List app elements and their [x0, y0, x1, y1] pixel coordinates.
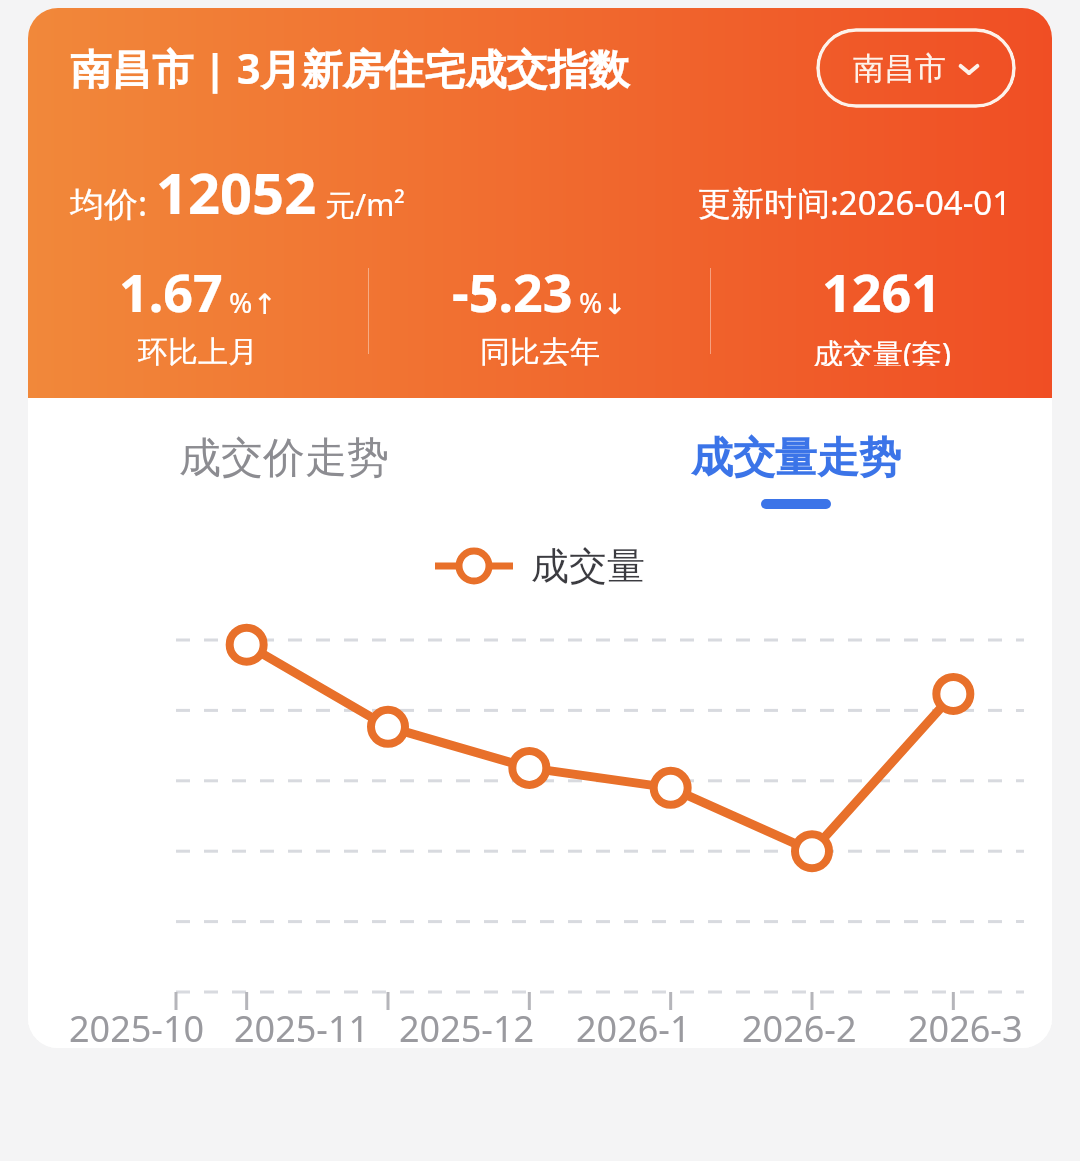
staticText: 2026-3 — [908, 1004, 1023, 1048]
staticText: 2025-12 — [399, 1004, 535, 1048]
button[interactable]: 1.67 — [28, 256, 368, 366]
staticText: 2026-2 — [742, 1004, 857, 1048]
staticText: -5.23 — [452, 256, 573, 327]
staticText: 1261 — [822, 256, 941, 327]
button[interactable]: 成交价走势 — [28, 432, 540, 532]
staticText: 成交量 — [531, 542, 645, 590]
staticText: 12052 — [156, 154, 317, 230]
staticText: ↑ — [253, 288, 277, 321]
staticText: 成交量(套) — [813, 333, 951, 366]
staticText: 元/m² — [325, 184, 405, 225]
staticText: 南昌市 — [853, 49, 946, 88]
staticText: 1.67 — [119, 256, 223, 327]
staticText: ↓ — [603, 288, 627, 321]
staticText: % — [579, 283, 603, 321]
button[interactable]: 成交量走势 — [540, 432, 1052, 532]
staticText: 2025-11 — [234, 1004, 370, 1048]
staticText: % — [229, 283, 253, 321]
staticText: 成交价走势 — [179, 432, 389, 485]
staticText: 2026-1 — [576, 1004, 691, 1048]
staticText: 更新时间:2026-04-01 — [698, 180, 1012, 225]
staticText: 2025-10 — [69, 1004, 205, 1048]
staticText: 南昌市 | 3月新房住宅成交指数 — [70, 40, 816, 96]
button[interactable]: 南昌市 — [816, 28, 1016, 108]
staticText: 成交量走势 — [691, 432, 901, 485]
staticText: 环比上月 — [138, 333, 258, 366]
staticText: 均价: — [70, 180, 148, 226]
button[interactable]: -5.23 — [369, 256, 710, 366]
staticText: 同比去年 — [480, 333, 600, 366]
button[interactable]: 1261 — [711, 256, 1052, 366]
